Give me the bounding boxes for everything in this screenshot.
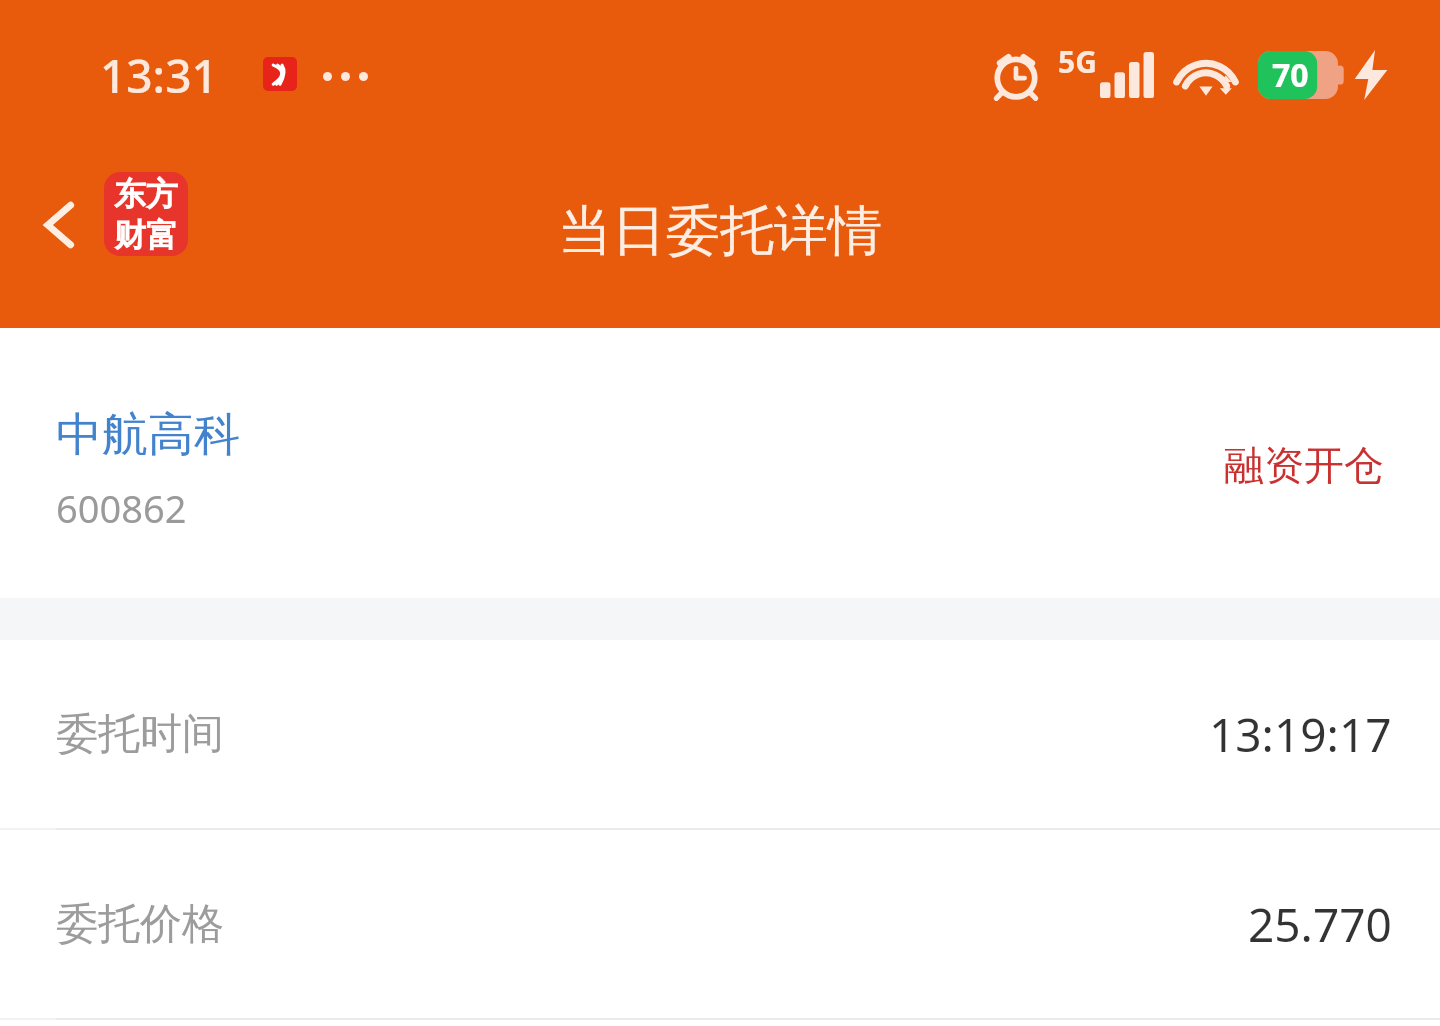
button[interactable]: 东方 xyxy=(104,172,188,256)
staticText: 东方 xyxy=(114,174,178,214)
staticText: 70 xyxy=(1272,53,1309,97)
staticText: 13:19:17 xyxy=(1209,703,1392,766)
staticText: 5G xyxy=(1058,41,1097,82)
staticText: 当日委托详情 xyxy=(558,197,882,265)
staticText: 25.770 xyxy=(1248,893,1392,956)
button[interactable]: 委托时间 xyxy=(0,640,1440,828)
staticText: 委托价格 xyxy=(56,898,224,951)
button[interactable]: 中航高科 xyxy=(0,328,1440,598)
staticText: 委托时间 xyxy=(56,708,224,761)
staticText: 600862 xyxy=(56,482,187,534)
button[interactable]: 委托价格 xyxy=(0,830,1440,1018)
staticText: 融资开仓 xyxy=(1224,440,1384,490)
staticText: 中航高科 xyxy=(56,406,240,464)
staticText: 财富 xyxy=(114,215,178,255)
button[interactable]: 返回 xyxy=(16,180,106,270)
staticText: 13:31 xyxy=(100,44,218,107)
